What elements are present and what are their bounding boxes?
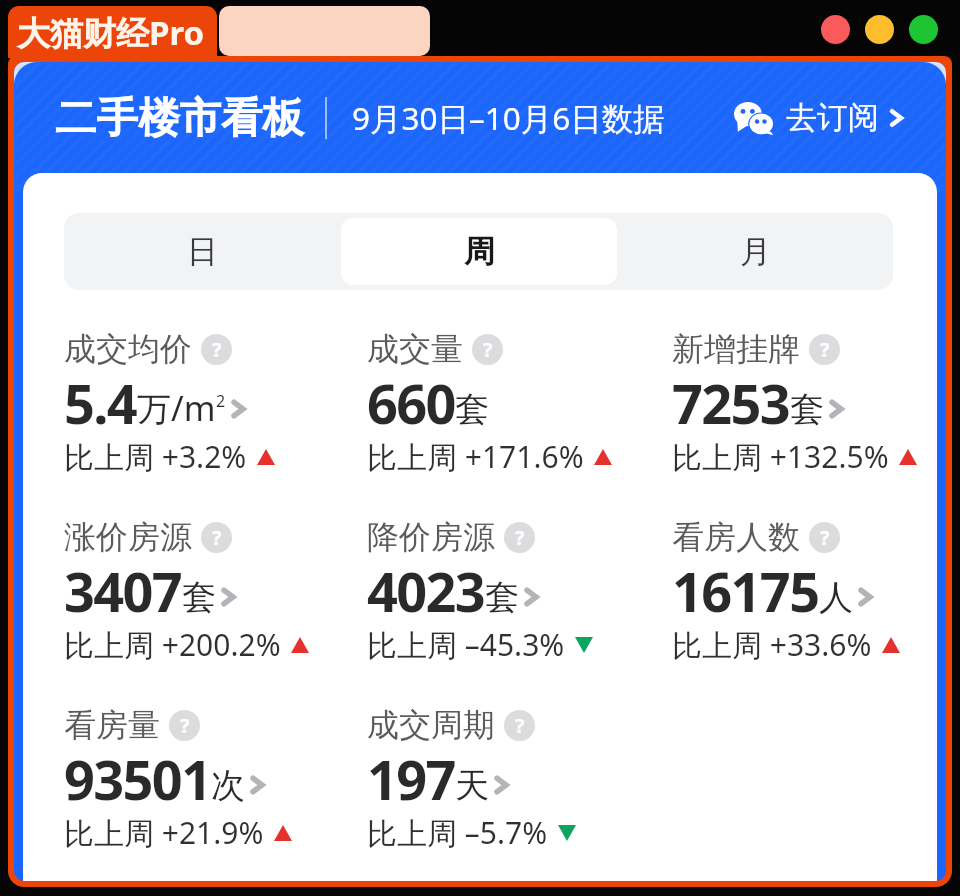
staticText: 新增挂牌 — [672, 329, 800, 369]
button[interactable]: 成交均价 — [64, 329, 367, 484]
staticText: 人 — [819, 576, 853, 619]
staticText: ? — [180, 712, 190, 739]
staticText: ? — [515, 712, 525, 739]
staticText: 看房人数 — [672, 517, 800, 557]
staticText: 成交量 — [367, 329, 463, 369]
staticText: 比上周 +132.5% — [672, 436, 889, 477]
staticText: ? — [212, 336, 222, 363]
staticText: 套 — [790, 388, 824, 431]
staticText: 天 — [455, 764, 489, 807]
staticText: 套 — [485, 576, 519, 619]
button[interactable]: 大猫财经Pro — [8, 6, 217, 58]
staticText: 比上周 +33.6% — [672, 624, 872, 665]
staticText: 套 — [455, 388, 489, 431]
button[interactable]: WeChat — [734, 98, 904, 137]
staticText: 197 — [367, 742, 455, 816]
staticText: 次 — [211, 764, 245, 807]
button[interactable]: 周 — [341, 218, 617, 285]
staticText: 套 — [182, 576, 216, 619]
button[interactable]: Minimize — [865, 15, 894, 44]
staticText: 4023 — [367, 554, 485, 628]
button[interactable]: 降价房源 — [367, 517, 672, 672]
staticText: 成交周期 — [367, 705, 495, 745]
staticText: 看房量 — [64, 705, 160, 745]
staticText: 2 — [216, 390, 226, 412]
staticText: 成交均价 — [64, 329, 192, 369]
other: WeChat — [734, 102, 773, 134]
button[interactable]: 成交量 — [367, 329, 672, 484]
staticText: ? — [820, 524, 830, 551]
staticText: 比上周 –45.3% — [367, 624, 565, 665]
staticText: 比上周 +21.9% — [64, 812, 264, 853]
button[interactable]: 月 — [617, 218, 893, 285]
button[interactable]: 日 — [64, 218, 341, 285]
staticText: ? — [515, 524, 525, 551]
staticText: 比上周 +200.2% — [64, 624, 281, 665]
staticText: 93501 — [64, 742, 211, 816]
staticText: 日 — [187, 232, 218, 271]
staticText: 涨价房源 — [64, 517, 192, 557]
staticText: 比上周 –5.7% — [367, 812, 548, 853]
staticText: 月 — [740, 232, 771, 271]
staticText: 3407 — [64, 554, 182, 628]
staticText: 9月30日–10月6日数据 — [352, 96, 665, 139]
button[interactable]: 成交周期 — [367, 705, 672, 860]
staticText: 二手楼市看板 — [55, 92, 304, 144]
staticText: ? — [820, 336, 830, 363]
staticText: ? — [483, 336, 493, 363]
button[interactable]: 涨价房源 — [64, 517, 367, 672]
staticText: 比上周 +171.6% — [367, 436, 584, 477]
staticText: 去订阅 — [786, 98, 879, 137]
staticText: 比上周 +3.2% — [64, 436, 247, 477]
button[interactable]: Maximize — [909, 15, 938, 44]
staticText: 16175 — [672, 554, 819, 628]
staticText: 降价房源 — [367, 517, 495, 557]
staticText: ? — [212, 524, 222, 551]
staticText: 周 — [464, 232, 495, 271]
staticText: 660 — [367, 366, 455, 440]
staticText: 大猫财经Pro — [17, 10, 205, 55]
button[interactable]: 看房人数 — [672, 517, 900, 672]
button[interactable]: 看房量 — [64, 705, 367, 860]
staticText: 万/m — [137, 385, 216, 431]
staticText: 5.4 — [64, 366, 137, 440]
staticText: 7253 — [672, 366, 790, 440]
button[interactable]: Close — [821, 15, 850, 44]
button[interactable]: 新增挂牌 — [672, 329, 917, 484]
